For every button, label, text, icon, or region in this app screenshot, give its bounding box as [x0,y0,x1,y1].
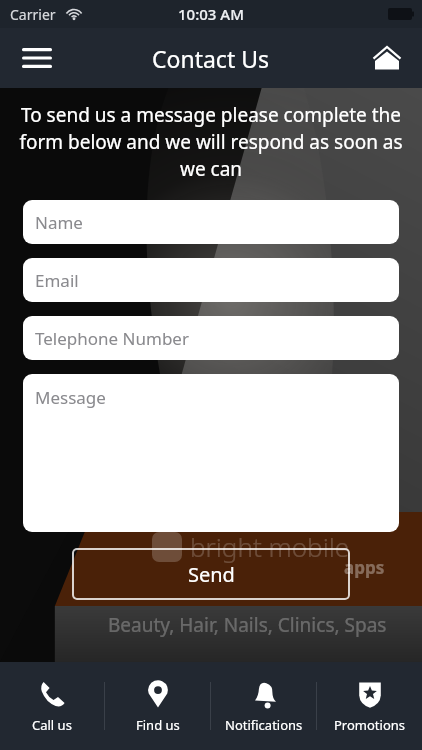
staticText: Promotions [334,716,406,734]
staticText: Call us [32,716,72,734]
staticText: Name [35,211,83,234]
button[interactable]: Menu [14,35,60,81]
button[interactable]: Email [23,258,399,302]
button[interactable]: Notifications [211,671,316,742]
button[interactable]: Promotions [317,671,422,742]
staticText: Message [35,386,106,409]
staticText: bright mobile [190,529,350,564]
button[interactable]: Name [23,200,399,244]
button[interactable]: Send [72,548,350,600]
button[interactable]: Home [364,35,410,81]
button[interactable]: Message [23,374,399,532]
staticText: Carrier [10,5,56,24]
button[interactable]: Telephone Number [23,316,399,360]
staticText: apps [344,556,385,579]
button[interactable]: Call us [0,671,104,742]
staticText: Contact Us [152,43,270,74]
button[interactable]: Find us [105,671,210,742]
staticText: Email [35,269,79,292]
staticText: To send us a message please complete the… [14,102,408,182]
staticText: Send [188,561,235,588]
staticText: Notifications [225,716,303,734]
staticText: Telephone Number [35,327,189,350]
staticText: Find us [136,716,180,734]
staticText: Beauty, Hair, Nails, Clinics, Spas [108,612,387,638]
staticText: 10:03 AM [178,4,244,24]
